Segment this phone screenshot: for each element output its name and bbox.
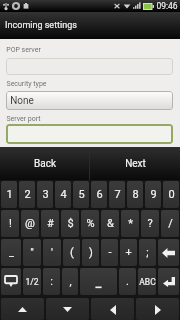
button[interactable]: * xyxy=(121,210,139,237)
staticText: 4 xyxy=(60,188,67,201)
staticText: + xyxy=(125,246,132,259)
button[interactable]: : xyxy=(43,268,60,295)
button[interactable]: ( xyxy=(63,239,80,266)
staticText: . xyxy=(126,275,129,288)
button[interactable]: % xyxy=(81,210,99,237)
button[interactable]: & xyxy=(101,210,119,237)
staticText: / xyxy=(168,217,173,230)
staticText: Next xyxy=(125,158,146,170)
button[interactable] xyxy=(6,124,173,144)
button[interactable]: 0 xyxy=(163,181,179,208)
button[interactable]: $ xyxy=(61,210,79,237)
staticText: 1/2 xyxy=(25,277,39,287)
button[interactable]: 1 xyxy=(1,181,17,208)
staticText: & xyxy=(107,217,114,230)
staticText: 6 xyxy=(96,188,103,201)
button[interactable]: 4 xyxy=(55,181,71,208)
staticText: 8 xyxy=(132,188,139,201)
staticText: Security type xyxy=(6,80,47,88)
staticText: None xyxy=(10,95,34,107)
button[interactable]: ; xyxy=(139,239,156,266)
button[interactable]: - xyxy=(101,239,118,266)
button[interactable]: + xyxy=(120,239,137,266)
button[interactable]: Right xyxy=(136,298,179,320)
staticText: * xyxy=(128,217,133,230)
staticText: - xyxy=(108,246,112,259)
button[interactable]: Left xyxy=(91,298,134,320)
staticText: ? xyxy=(147,217,153,230)
button[interactable]: " xyxy=(23,239,41,266)
button[interactable]: 3 xyxy=(37,181,53,208)
staticText: 0 xyxy=(168,188,175,201)
staticText: ( xyxy=(70,246,74,259)
button[interactable]: 8 xyxy=(127,181,143,208)
button[interactable]: 6 xyxy=(91,181,107,208)
staticText: , xyxy=(69,275,72,288)
button[interactable]: # xyxy=(41,210,59,237)
button[interactable]: Down xyxy=(46,298,89,320)
button[interactable]: None xyxy=(6,91,173,110)
staticText: 9 xyxy=(150,188,157,201)
button[interactable]: , xyxy=(62,268,78,295)
button[interactable] xyxy=(6,58,173,75)
button[interactable]: Backspace xyxy=(158,239,179,266)
staticText: POP server xyxy=(6,46,41,54)
staticText: ; xyxy=(146,246,149,259)
button[interactable]: ABC xyxy=(138,268,156,295)
button[interactable]: 2 xyxy=(19,181,35,208)
button[interactable]: Back xyxy=(0,147,89,180)
button[interactable]: ) xyxy=(82,239,99,266)
staticText: ' xyxy=(51,246,53,259)
staticText: ) xyxy=(89,246,93,259)
staticText: ! xyxy=(9,217,12,230)
button[interactable]: 5 xyxy=(73,181,89,208)
staticText: % xyxy=(86,217,95,230)
button[interactable]: 7 xyxy=(109,181,125,208)
button[interactable]: Hide keyboard xyxy=(1,268,21,295)
button[interactable]: Up xyxy=(1,298,44,320)
staticText: # xyxy=(47,217,54,230)
staticText: ABC xyxy=(139,277,156,287)
button[interactable]: @ xyxy=(21,210,39,237)
staticText: Server port xyxy=(6,115,41,123)
staticText: 7 xyxy=(114,188,121,201)
button[interactable]: . xyxy=(119,268,136,295)
staticText: 5 xyxy=(78,188,85,201)
staticText: @ xyxy=(25,217,35,230)
staticText: _ xyxy=(9,246,14,259)
staticText: $ xyxy=(67,217,74,230)
button[interactable]: ? xyxy=(141,210,159,237)
staticText: " xyxy=(30,246,34,259)
staticText: : xyxy=(50,275,53,288)
staticText: Incoming settings xyxy=(5,20,77,31)
button[interactable]: Space xyxy=(80,268,117,295)
button[interactable]: 1/2 xyxy=(23,268,41,295)
staticText: 09:46 xyxy=(156,1,178,11)
button[interactable]: _ xyxy=(1,239,21,266)
button[interactable]: 9 xyxy=(145,181,161,208)
staticText: 3 xyxy=(42,188,49,201)
staticText: Back xyxy=(34,158,56,170)
staticText: 1 xyxy=(6,188,13,201)
button[interactable]: Next xyxy=(90,147,180,180)
button[interactable]: / xyxy=(161,210,179,237)
button[interactable]: ! xyxy=(1,210,19,237)
button[interactable]: Enter xyxy=(158,268,179,295)
staticText: 2 xyxy=(24,188,31,201)
button[interactable]: ' xyxy=(43,239,61,266)
